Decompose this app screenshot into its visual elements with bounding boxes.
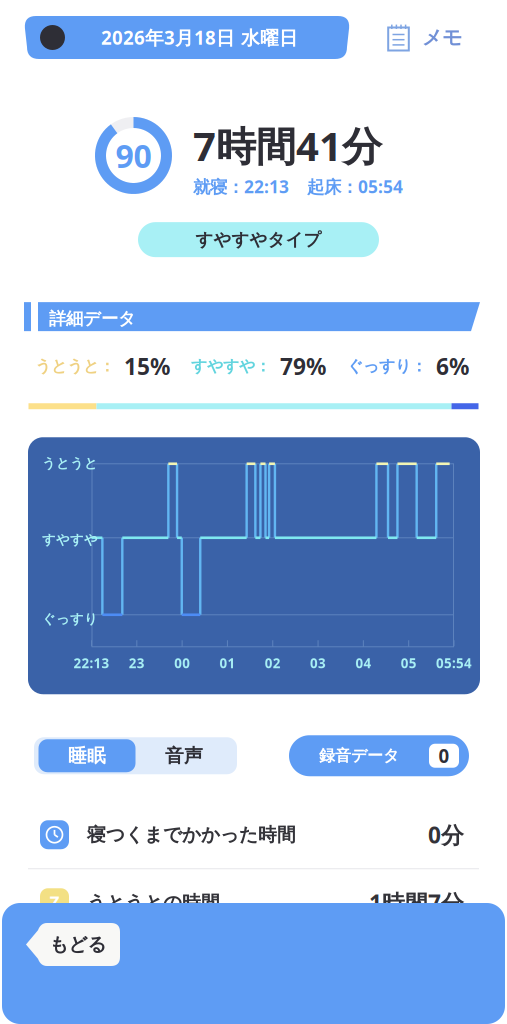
staticText: 7時間41分	[193, 119, 382, 172]
staticText: うとうと：	[35, 356, 115, 376]
button[interactable]: 睡眠	[38, 739, 135, 772]
staticText: 音声	[165, 744, 203, 767]
staticText: 00	[174, 654, 190, 672]
button[interactable]: Z	[0, 869, 507, 936]
staticText: 05:54	[436, 654, 472, 672]
staticText: 6%	[436, 351, 469, 381]
staticText: 睡眠	[68, 744, 106, 767]
staticText: 04	[355, 654, 371, 672]
staticText: 録音データ	[319, 746, 399, 766]
staticText: 90	[115, 134, 151, 177]
button[interactable]: 寝つくまでかかった時間	[0, 801, 507, 868]
staticText: 0	[438, 743, 449, 768]
staticText: 15%	[124, 351, 170, 381]
staticText: 02	[265, 654, 281, 672]
staticText: うとうとの時間	[87, 891, 220, 914]
staticText: ぐっすり：	[347, 356, 427, 376]
staticText: 22:13	[73, 654, 109, 672]
button[interactable]: メモ	[387, 16, 462, 59]
staticText: 詳細データ	[49, 308, 136, 329]
staticText: すやすや：	[191, 356, 271, 376]
staticText: 2026年3月18日 水曜日	[101, 25, 298, 50]
staticText: もどる	[49, 933, 106, 956]
staticText: 0分	[428, 820, 464, 850]
staticText: Z	[49, 891, 59, 914]
staticText: メモ	[422, 25, 462, 50]
staticText: 05	[401, 654, 417, 672]
staticText: 23	[129, 654, 145, 672]
staticText: 起床：05:54	[307, 175, 403, 198]
staticText: 01	[219, 654, 235, 672]
staticText: すやすや	[42, 532, 98, 548]
staticText: 03	[310, 654, 326, 672]
staticText: ぐっすり	[42, 611, 98, 627]
staticText: 寝つくまでかかった時間	[87, 823, 296, 846]
staticText: うとうと	[42, 455, 98, 472]
button[interactable]: 録音データ	[289, 735, 469, 776]
button[interactable]: 音声	[135, 740, 232, 772]
staticText: すやすやタイプ	[195, 229, 321, 250]
staticText: 就寝：22:13	[193, 175, 289, 198]
staticText: 1時間7分	[369, 888, 464, 918]
staticText: 79%	[280, 351, 326, 381]
button[interactable]: 2026年3月18日 水曜日	[24, 16, 350, 59]
button[interactable]: もどる	[26, 923, 120, 966]
